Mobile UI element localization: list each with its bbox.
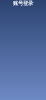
staticText: 账号登录	[13, 0, 33, 7]
